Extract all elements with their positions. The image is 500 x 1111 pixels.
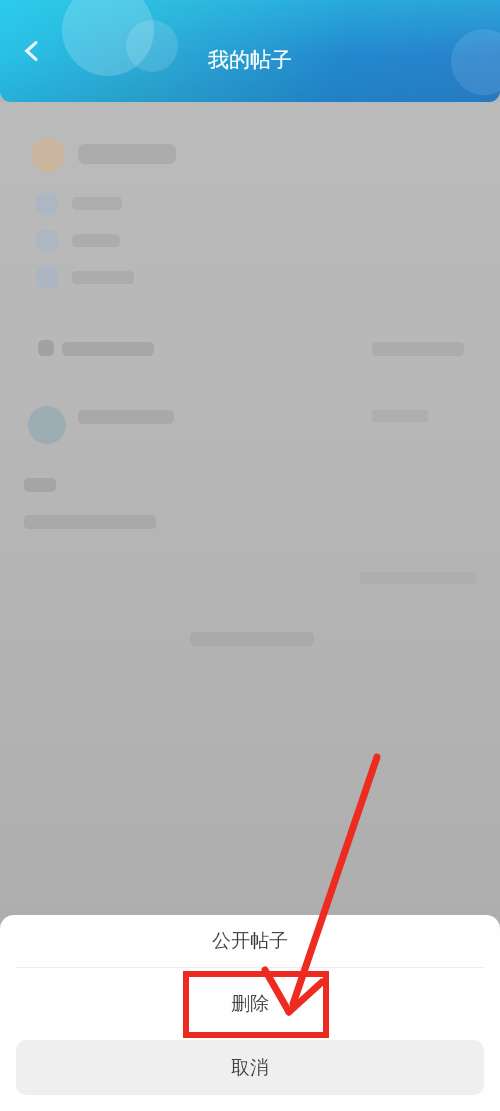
button[interactable]: 删除 bbox=[0, 968, 500, 1040]
staticText: 公开帖子 bbox=[212, 929, 288, 953]
staticText: 取消 bbox=[231, 1056, 269, 1080]
button[interactable]: 公开帖子 bbox=[0, 915, 500, 967]
button[interactable]: Back bbox=[6, 25, 58, 77]
staticText: 我的帖子 bbox=[208, 47, 292, 73]
button[interactable]: 取消 bbox=[16, 1040, 484, 1095]
staticText: 删除 bbox=[231, 992, 269, 1016]
